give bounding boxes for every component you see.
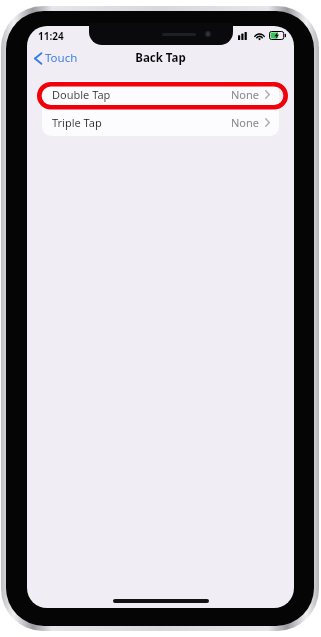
button[interactable]: Double Tap (42, 81, 279, 108)
staticText: None (231, 115, 260, 130)
other: Cellular signal (238, 32, 250, 40)
staticText: None (231, 87, 260, 102)
staticText: Triple Tap (52, 115, 102, 130)
staticText: Back Tap (135, 50, 186, 66)
staticText: Double Tap (52, 87, 111, 102)
button[interactable]: Touch (27, 47, 84, 69)
staticText: Touch (45, 50, 78, 66)
staticText: 11:24 (38, 29, 64, 43)
other: Wi-Fi (254, 32, 265, 40)
button[interactable]: Triple Tap (42, 109, 279, 136)
other: Battery charging (269, 31, 286, 40)
